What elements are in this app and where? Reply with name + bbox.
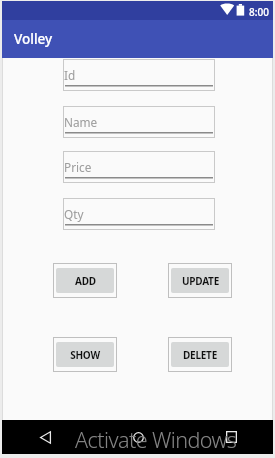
staticText: Qty <box>64 206 84 222</box>
button[interactable]: DELETE <box>168 337 232 372</box>
staticText: Activate Windows <box>75 425 237 454</box>
staticText: 8:00 <box>249 5 269 19</box>
staticText: DELETE <box>183 348 217 362</box>
button[interactable]: Price <box>63 151 215 183</box>
button[interactable]: Qty <box>63 198 215 230</box>
staticText: Id <box>64 67 76 83</box>
button[interactable]: Back <box>28 420 62 454</box>
staticText: Volley <box>14 30 53 48</box>
button[interactable]: Name <box>63 106 215 138</box>
button[interactable]: Id <box>63 59 215 91</box>
button[interactable]: UPDATE <box>168 263 232 298</box>
staticText: SHOW <box>70 348 100 362</box>
staticText: ADD <box>75 274 96 288</box>
staticText: Price <box>64 159 92 175</box>
button[interactable]: SHOW <box>53 337 117 372</box>
staticText: UPDATE <box>182 274 219 288</box>
button[interactable]: Recent apps <box>214 420 248 454</box>
button[interactable]: Home <box>121 420 155 454</box>
staticText: Name <box>64 114 98 130</box>
button[interactable]: ADD <box>53 263 117 298</box>
